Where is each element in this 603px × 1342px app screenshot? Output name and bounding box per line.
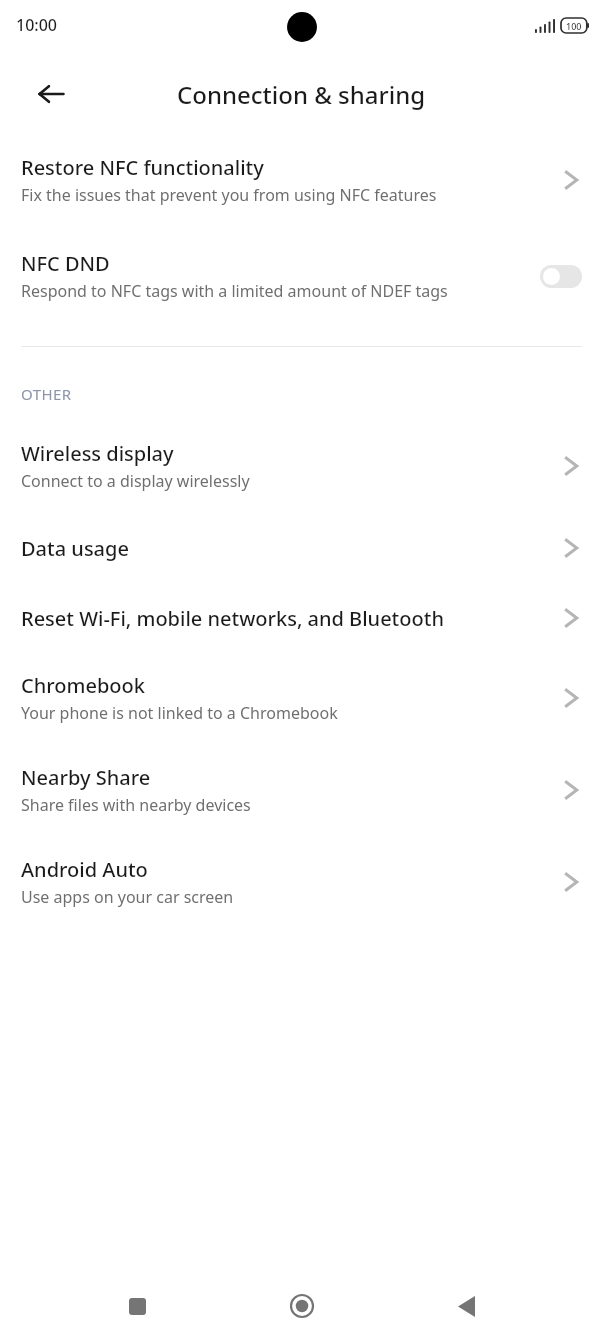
staticText: Nearby Share bbox=[21, 764, 151, 791]
button[interactable]: Chromebook bbox=[0, 652, 603, 744]
button[interactable]: Reset Wi-Fi, mobile networks, and Blueto… bbox=[0, 584, 603, 652]
staticText: Share files with nearby devices bbox=[21, 794, 251, 816]
staticText: Your phone is not linked to a Chromebook bbox=[21, 702, 338, 724]
button[interactable]: Android Auto bbox=[0, 836, 603, 928]
staticText: Reset Wi-Fi, mobile networks, and Blueto… bbox=[21, 605, 444, 632]
staticText: Android Auto bbox=[21, 856, 148, 883]
button[interactable]: Back bbox=[26, 69, 76, 119]
button[interactable]: Home bbox=[274, 1278, 330, 1334]
staticText: NFC DND bbox=[21, 250, 110, 277]
staticText: Fix the issues that prevent you from usi… bbox=[21, 184, 437, 206]
staticText: Connect to a display wirelessly bbox=[21, 470, 250, 492]
button[interactable]: Nearby Share bbox=[0, 744, 603, 836]
staticText: Data usage bbox=[21, 535, 129, 562]
button[interactable]: NFC DND toggle bbox=[540, 265, 582, 288]
staticText: Respond to NFC tags with a limited amoun… bbox=[21, 280, 448, 302]
staticText: 10:00 bbox=[16, 14, 57, 36]
button[interactable]: Recent apps bbox=[109, 1278, 165, 1334]
button[interactable]: Back bbox=[438, 1278, 494, 1334]
button[interactable]: Wireless display bbox=[0, 430, 603, 512]
staticText: Use apps on your car screen bbox=[21, 886, 234, 908]
staticText: Restore NFC functionality bbox=[21, 154, 264, 181]
button[interactable]: NFC DND bbox=[0, 228, 603, 324]
staticText: OTHER bbox=[21, 384, 72, 404]
staticText: 100 bbox=[566, 20, 582, 32]
button[interactable]: Data usage bbox=[0, 512, 603, 584]
staticText: Connection & sharing bbox=[177, 78, 426, 111]
staticText: Wireless display bbox=[21, 440, 174, 467]
button[interactable]: Restore NFC functionality bbox=[0, 146, 603, 228]
staticText: Chromebook bbox=[21, 672, 145, 699]
